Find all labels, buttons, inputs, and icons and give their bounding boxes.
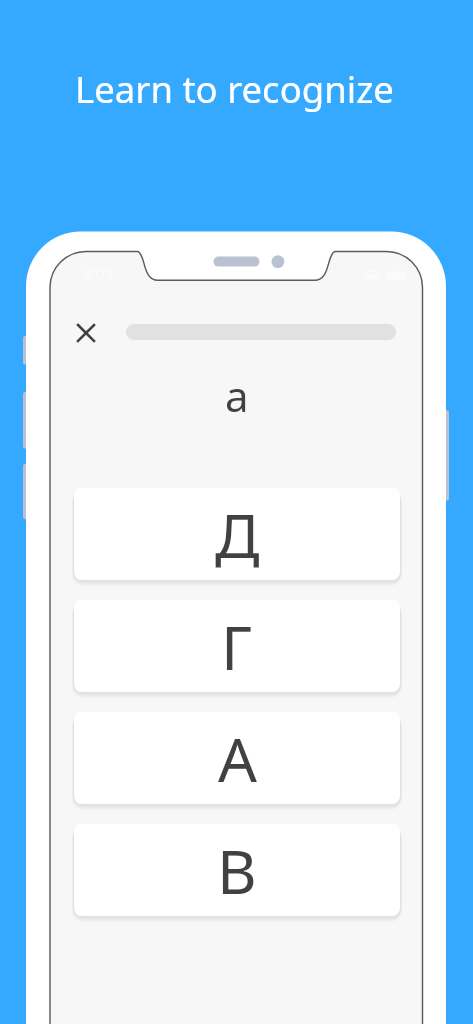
staticText: Д <box>215 493 260 576</box>
button[interactable]: В <box>74 824 400 916</box>
staticText: a <box>225 367 249 424</box>
button[interactable]: Close <box>70 317 102 349</box>
staticText: Г <box>221 605 253 688</box>
staticText: А <box>218 717 257 800</box>
staticText: Learn to recognize <box>75 64 394 114</box>
staticText: В <box>217 829 257 912</box>
button[interactable]: А <box>74 712 400 804</box>
button[interactable]: Д <box>74 488 400 580</box>
button[interactable]: Г <box>74 600 400 692</box>
